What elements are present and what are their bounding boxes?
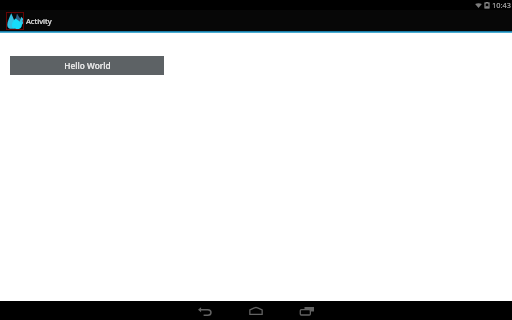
button[interactable]: Back <box>181 301 231 320</box>
button[interactable]: Hello World <box>10 56 164 75</box>
button[interactable]: Recents <box>281 301 331 320</box>
staticText: Hello World <box>64 60 111 71</box>
button[interactable]: Home <box>231 301 281 320</box>
button[interactable]: Activity <box>0 10 512 31</box>
staticText: 10:43 <box>492 0 511 10</box>
staticText: Activity <box>26 16 52 26</box>
